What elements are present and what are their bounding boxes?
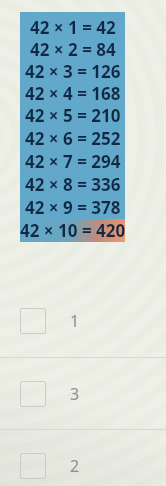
staticText: 42 × 3 = 126 [25, 60, 121, 82]
button[interactable]: 3 [0, 358, 166, 429]
staticText: 42 × 6 = 252 [25, 127, 121, 150]
button[interactable]: 2 [0, 430, 166, 486]
button[interactable]: 1 [0, 285, 166, 357]
staticText: 42 × 2 = 84 [30, 38, 116, 60]
staticText: 2 [70, 455, 80, 477]
staticText: 1 [70, 310, 80, 332]
staticText: 42 × 8 = 336 [25, 173, 121, 196]
staticText: 42 × 9 = 378 [25, 196, 121, 219]
staticText: 42 × 5 = 210 [25, 104, 121, 127]
staticText: 42 × 7 = 294 [25, 150, 121, 173]
staticText: 42 × 1 = 42 [30, 16, 116, 38]
staticText: 3 [70, 383, 80, 405]
staticText: 42 × 4 = 168 [25, 82, 121, 104]
staticText: 42 × 10 = 420 [20, 219, 125, 242]
